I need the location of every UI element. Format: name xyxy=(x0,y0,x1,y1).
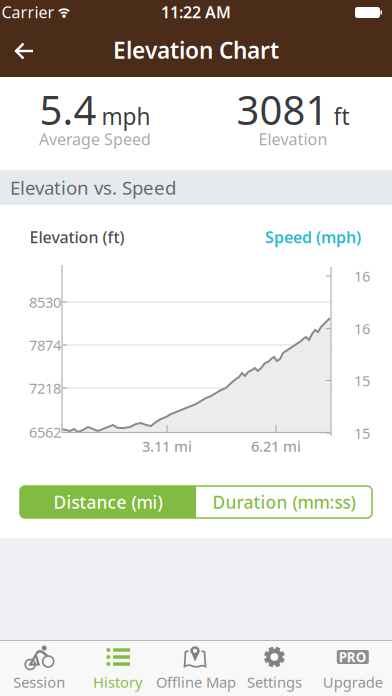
staticText: Carrier xyxy=(1,1,54,23)
button[interactable]: Back xyxy=(2,31,46,71)
staticText: Average Speed xyxy=(39,128,151,150)
button[interactable]: Settings xyxy=(235,640,314,696)
staticText: 16 xyxy=(354,266,370,286)
staticText: 7218 xyxy=(29,378,61,398)
staticText: 7874 xyxy=(29,335,61,355)
staticText: 15 xyxy=(354,423,370,443)
staticText: Settings xyxy=(247,672,302,692)
staticText: Elevation (ft) xyxy=(29,226,124,248)
staticText: 11:22 AM xyxy=(161,1,231,23)
staticText: Elevation xyxy=(258,128,327,150)
staticText: Session xyxy=(13,672,65,692)
staticText: 3.11 mi xyxy=(142,436,192,456)
button[interactable]: Offline Map xyxy=(157,640,235,696)
staticText: Speed (mph) xyxy=(265,226,361,248)
staticText: Offline Map xyxy=(156,672,236,692)
button[interactable]: History xyxy=(78,640,157,696)
staticText: PRO xyxy=(339,648,367,666)
staticText: Duration (mm:ss) xyxy=(212,490,355,513)
staticText: Elevation vs. Speed xyxy=(10,175,176,200)
staticText: 5.4 xyxy=(39,83,96,136)
staticText: Upgrade xyxy=(323,672,383,692)
button[interactable]: Session xyxy=(0,640,78,696)
staticText: ft xyxy=(333,101,349,131)
staticText: 16 xyxy=(354,319,370,338)
staticText: Distance (mi) xyxy=(53,490,162,513)
staticText: 6562 xyxy=(29,422,61,442)
staticText: 3081 xyxy=(236,83,328,136)
button[interactable]: Distance (mi) xyxy=(20,486,196,518)
staticText: Elevation Chart xyxy=(113,35,279,65)
staticText: mph xyxy=(101,101,150,131)
staticText: 8530 xyxy=(29,292,61,312)
button[interactable]: Duration (mm:ss) xyxy=(196,486,372,518)
staticText: 15 xyxy=(354,371,370,390)
staticText: 6.21 mi xyxy=(251,436,301,456)
staticText: History xyxy=(93,672,142,692)
button[interactable]: PRO xyxy=(314,640,392,696)
